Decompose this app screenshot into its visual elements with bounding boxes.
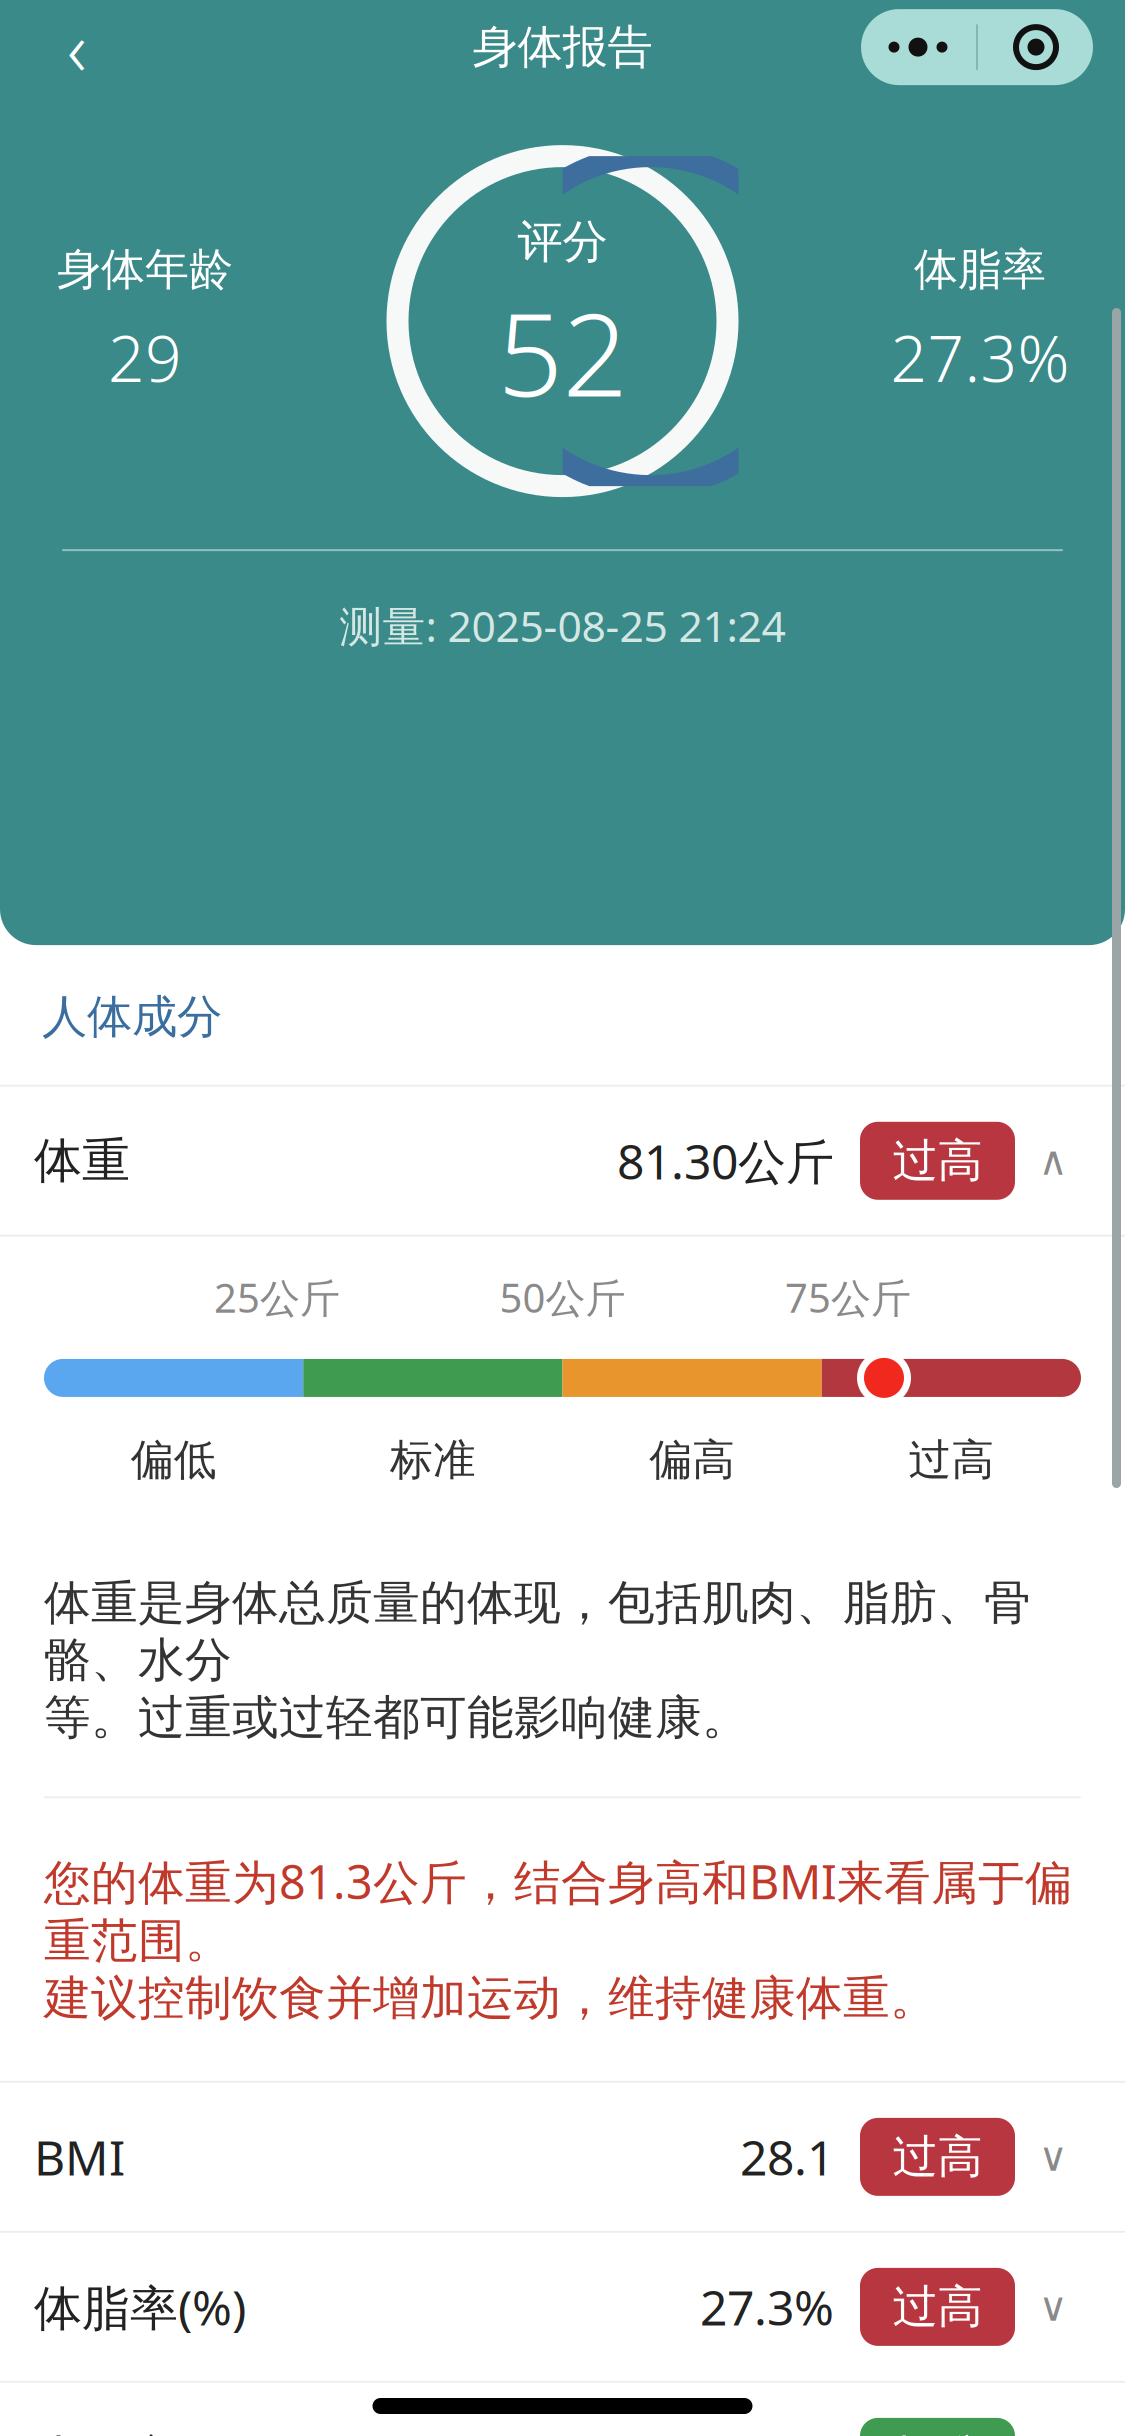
staticText: ‹ xyxy=(67,0,87,97)
staticText: ∨ xyxy=(1038,2284,1067,2330)
staticText: 偏高 xyxy=(649,1434,735,1486)
staticText: 75公斤 xyxy=(785,1271,911,1324)
staticText: 27.3% xyxy=(700,2275,834,2339)
staticText: ∨ xyxy=(1038,2134,1067,2180)
staticText: 过高 xyxy=(892,2279,982,2335)
staticText: 水分率(%) xyxy=(34,2425,246,2436)
staticText: 27.3% xyxy=(890,315,1069,400)
staticText: ∧ xyxy=(1038,1138,1067,1183)
button[interactable]: 体脂率(%) xyxy=(0,2233,1125,2381)
staticText: 25公斤 xyxy=(214,1271,340,1324)
staticText: 测量: 2025-08-25 21:24 xyxy=(339,597,785,654)
staticText: 人体成分 xyxy=(42,989,222,1045)
staticText: 体重是身体总质量的体现，包括肌肉、脂肪、骨骼、水分 等。过重或过轻都可能影响健康… xyxy=(44,1574,1031,1746)
staticText: 体脂率(%) xyxy=(34,2275,246,2339)
button[interactable]: BMI xyxy=(0,2083,1125,2231)
staticText: 身体年龄 xyxy=(57,243,233,297)
button[interactable]: 体重 xyxy=(0,1087,1125,1235)
staticText: 52 xyxy=(497,276,627,428)
staticText: 29 xyxy=(108,315,182,400)
staticText: 评分 xyxy=(517,214,607,270)
staticText: 过高 xyxy=(892,1133,982,1189)
staticText: 体重 xyxy=(34,1131,130,1190)
staticText: 50公斤 xyxy=(499,1271,625,1324)
staticText: 偏低 xyxy=(131,1434,217,1486)
button[interactable]: 水分率(%) xyxy=(0,2383,1125,2436)
staticText: 您的体重为81.3公斤，结合身高和BMI来看属于偏重范围。 建议控制饮食并增加运… xyxy=(44,1850,1072,2027)
staticText: 81.30公斤 xyxy=(617,1129,834,1193)
staticText: BMI xyxy=(34,2125,125,2189)
staticText: 过高 xyxy=(892,2129,982,2185)
staticText: 体脂率 xyxy=(914,243,1046,297)
staticText: 标准 xyxy=(892,2429,982,2436)
button[interactable]: 更多 xyxy=(861,9,1093,85)
button[interactable]: 返回 xyxy=(32,7,122,87)
staticText: 身体报告 xyxy=(472,19,652,75)
staticText: 28.1 xyxy=(740,2125,834,2189)
staticText: 标准 xyxy=(390,1434,476,1486)
staticText: 过高 xyxy=(908,1434,994,1486)
